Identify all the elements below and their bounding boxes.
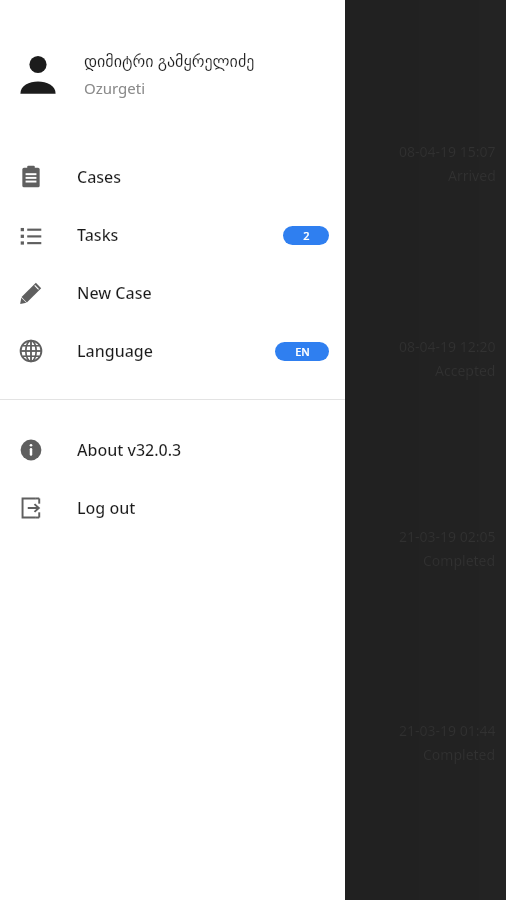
staticText: Accepted [435,361,496,380]
staticText: Completed [423,551,496,570]
staticText: New Case [77,282,152,304]
staticText: Arrived [448,166,496,185]
button[interactable]: New Case [0,264,345,322]
button[interactable]: Cases [0,148,345,206]
button[interactable]: დიმიტრი გამყრელიძე [0,44,345,104]
staticText: Log out [77,497,136,519]
staticText: Language [77,340,153,362]
staticText: 21-03-19 02:05 [399,527,496,546]
button[interactable]: Tasks [0,206,345,264]
staticText: EN [295,344,310,359]
staticText: Ozurgeti [84,78,146,98]
button[interactable]: Log out [0,479,345,537]
button[interactable]: Language [0,322,345,380]
staticText: 08-04-19 12:20 [399,337,496,356]
staticText: 2 [303,228,310,243]
staticText: About v32.0.3 [77,439,182,461]
staticText: Tasks [77,224,119,246]
button[interactable]: About v32.0.3 [0,421,345,479]
staticText: დიმიტრი გამყრელიძე [84,50,255,72]
staticText: 08-04-19 15:07 [399,142,496,161]
staticText: Completed [423,745,496,764]
staticText: 21-03-19 01:44 [399,721,496,740]
staticText: Cases [77,166,122,188]
